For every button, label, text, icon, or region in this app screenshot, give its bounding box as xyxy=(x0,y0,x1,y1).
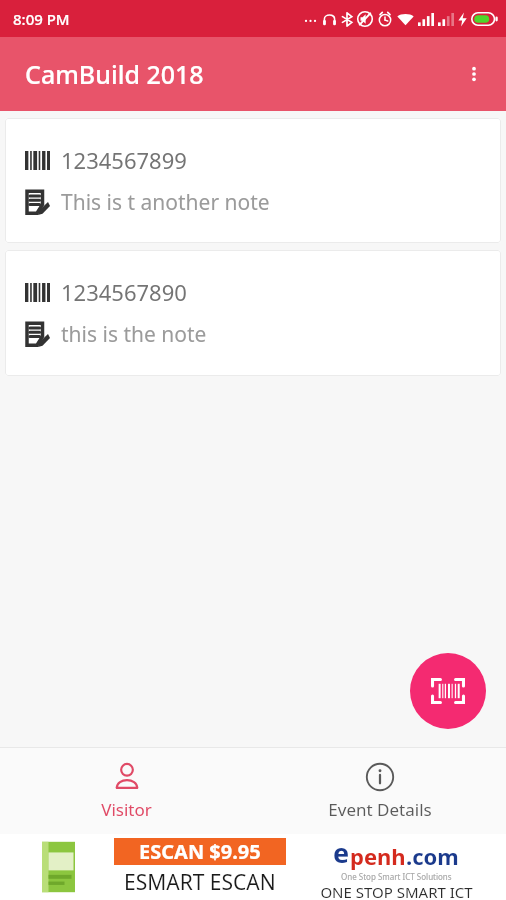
staticText: ESMART ESCAN xyxy=(124,868,276,897)
staticText: ONE STOP SMART ICT SOLUTIONS xyxy=(320,882,473,900)
button[interactable]: 1234567899 xyxy=(5,118,501,243)
button[interactable]: ESCAN $9.95 xyxy=(0,834,506,900)
button[interactable]: Scan barcode xyxy=(410,653,486,729)
staticText: CamBuild 2018 xyxy=(25,57,204,91)
staticText: 8:09 PM xyxy=(13,9,70,29)
button[interactable]: Visitor xyxy=(0,748,253,834)
staticText: 1234567899 xyxy=(61,145,187,175)
button[interactable]: More options xyxy=(450,50,498,98)
staticText: One Stop Smart ICT Solutions xyxy=(341,871,452,882)
staticText: This is t another note xyxy=(61,188,270,217)
staticText: 1234567890 xyxy=(61,277,187,307)
staticText: ESCAN $9.95 xyxy=(139,838,261,865)
staticText: Visitor xyxy=(101,798,152,821)
staticText: e xyxy=(333,834,350,871)
staticText: penh xyxy=(350,841,406,871)
staticText: this is the note xyxy=(61,320,207,349)
button[interactable]: Event Details xyxy=(253,748,506,834)
staticText: .com xyxy=(406,841,459,871)
staticText: Event Details xyxy=(328,798,432,821)
button[interactable]: 1234567890 xyxy=(5,250,501,376)
